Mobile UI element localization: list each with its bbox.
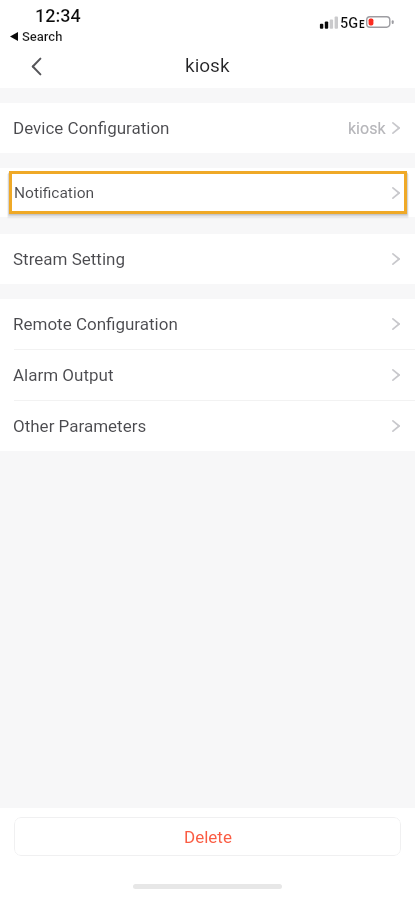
- button[interactable]: Notification: [9, 171, 407, 214]
- staticText: Delete: [184, 827, 232, 847]
- staticText: kiosk: [185, 54, 230, 76]
- button[interactable]: Device Configuration: [0, 103, 415, 153]
- button[interactable]: Back: [14, 45, 58, 88]
- button[interactable]: Remote Configuration: [0, 299, 415, 349]
- button[interactable]: Alarm Output: [0, 350, 415, 400]
- staticText: Remote Configuration: [13, 314, 178, 334]
- staticText: 5G: [340, 15, 359, 32]
- staticText: 12:34: [35, 5, 81, 26]
- button[interactable]: Other Parameters: [0, 401, 415, 451]
- staticText: Notification: [14, 184, 95, 202]
- staticText: E: [359, 19, 365, 31]
- staticText: Alarm Output: [13, 365, 114, 385]
- staticText: Device Configuration: [13, 118, 170, 138]
- button[interactable]: Stream Setting: [0, 234, 415, 284]
- button[interactable]: Delete: [14, 817, 401, 856]
- staticText: Stream Setting: [13, 249, 125, 269]
- staticText: kiosk: [348, 119, 386, 138]
- staticText: Other Parameters: [13, 416, 147, 436]
- staticText: Search: [22, 29, 63, 44]
